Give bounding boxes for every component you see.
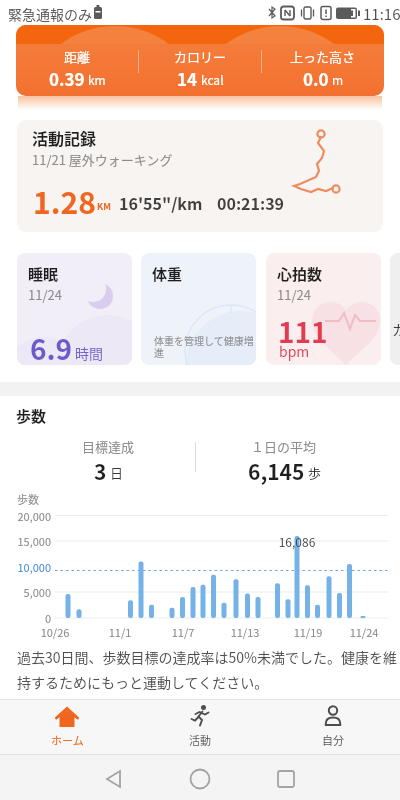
staticText: bpm (279, 341, 310, 361)
staticText: 11/24 (339, 624, 389, 640)
button[interactable]: 距離 (16, 25, 384, 96)
staticText: 0.39 (49, 66, 85, 91)
staticText: KM (97, 200, 111, 213)
staticText: 11/7 (158, 624, 208, 640)
staticText: 距離 (64, 47, 91, 66)
button[interactable]: 自分 (293, 704, 373, 754)
staticText: 目標達成 (82, 437, 135, 456)
staticText: 時間 (75, 343, 103, 363)
button[interactable]: 活動記録 (17, 120, 383, 232)
staticText: 11/1 (95, 624, 145, 640)
staticText: 11/24 (277, 285, 311, 304)
button[interactable]: ホーム (27, 704, 107, 754)
staticText: 11:16 (363, 3, 400, 25)
staticText: 歩 (305, 463, 321, 482)
staticText: 15,000 (10, 533, 51, 549)
staticText: 体重を管理して健康増 進 (154, 333, 256, 360)
button[interactable]: 活動 (160, 704, 240, 754)
staticText: 5,000 (10, 584, 51, 600)
staticText: 緊急通報のみ (8, 4, 92, 24)
staticText: km (88, 71, 106, 88)
staticText: 16,086 (272, 533, 322, 550)
staticText: 0 (10, 610, 51, 626)
staticText: 心拍数 (277, 263, 323, 285)
staticText: ホーム (51, 732, 84, 748)
staticText: 1.28 (33, 179, 96, 220)
button[interactable]: カ (390, 253, 400, 365)
staticText: 活動 (189, 732, 211, 748)
staticText: 歩数 (16, 405, 47, 427)
button[interactable] (267, 754, 400, 800)
staticText: 歩数 (17, 491, 39, 507)
button[interactable]: 睡眠 (17, 253, 132, 365)
button[interactable] (134, 754, 267, 800)
staticText: 6,145 (248, 456, 305, 486)
staticText: 自分 (322, 732, 344, 748)
staticText: 00:21:39 (217, 191, 285, 214)
staticText: 11/24 (28, 285, 62, 304)
staticText: kcal (201, 71, 224, 88)
staticText: 日 (107, 463, 123, 482)
staticText: カ (392, 319, 400, 339)
staticText: 10/26 (30, 624, 80, 640)
staticText: 3 (94, 456, 107, 486)
staticText: 11/13 (220, 624, 270, 640)
button[interactable]: 体重 (141, 253, 256, 365)
staticText: 体重 (152, 263, 183, 285)
staticText: 14 (177, 66, 198, 91)
staticText: 16'55"/km (119, 191, 203, 214)
staticText: 過去30日間、歩数目標の達成率は50%未満でした。健康を維 持するためにもっと運… (17, 647, 397, 692)
staticText: 活動記録 (32, 126, 97, 149)
staticText: カロリー (174, 47, 227, 66)
staticText: １日の平均 (251, 437, 317, 456)
staticText: 睡眠 (28, 263, 59, 285)
button[interactable]: 心拍数 (266, 253, 381, 365)
staticText: 111 (278, 311, 328, 352)
button[interactable] (0, 754, 134, 800)
staticText: 11/21 屋外ウォーキング (32, 150, 173, 169)
staticText: 0.0 (303, 66, 329, 91)
staticText: 10,000 (10, 559, 51, 575)
staticText: 11/19 (283, 624, 333, 640)
staticText: m (332, 71, 344, 88)
staticText: 20,000 (10, 508, 51, 524)
staticText: 6.9 (30, 328, 73, 365)
staticText: 上った高さ (290, 47, 356, 66)
